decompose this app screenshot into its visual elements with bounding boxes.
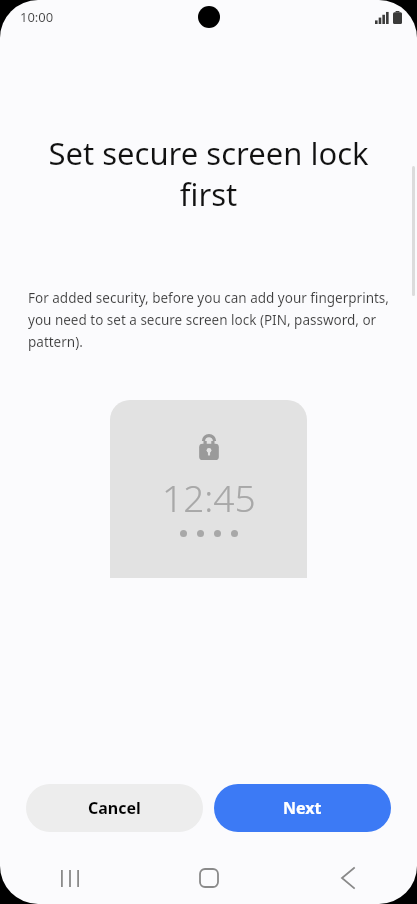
button[interactable]: Home [139, 852, 278, 904]
button[interactable]: Next [214, 784, 391, 832]
staticText: Cancel [88, 797, 141, 819]
button[interactable]: Back [278, 852, 417, 904]
staticText: 10:00 [20, 8, 54, 26]
staticText: 12:45 [162, 472, 256, 522]
staticText: Set secure screen lock first [34, 132, 383, 215]
button[interactable]: Cancel [26, 784, 203, 832]
button[interactable]: Recent apps [0, 852, 139, 904]
staticText: Next [283, 797, 322, 819]
staticText: For added security, before you can add y… [28, 289, 393, 351]
